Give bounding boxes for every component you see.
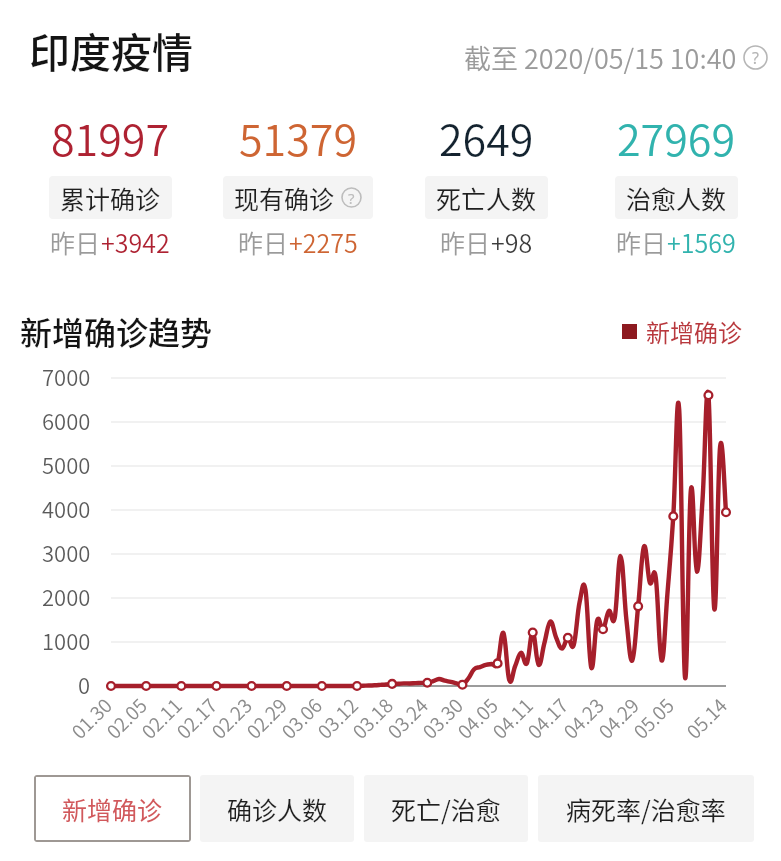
staticText: 03.12 bbox=[311, 691, 364, 744]
staticText: 05.14 bbox=[680, 691, 733, 744]
staticText: 6000 bbox=[42, 404, 91, 436]
staticText: 确诊人数 bbox=[227, 791, 328, 827]
staticText: 新增确诊 bbox=[62, 791, 163, 827]
staticText: 02.23 bbox=[205, 691, 258, 744]
staticText: 04.23 bbox=[557, 691, 610, 744]
staticText: ? bbox=[752, 47, 759, 69]
button[interactable]: 死亡/治愈 bbox=[364, 775, 528, 842]
staticText: 7000 bbox=[42, 360, 91, 392]
staticText: 死亡人数 bbox=[436, 180, 537, 216]
staticText: 01.30 bbox=[65, 691, 118, 744]
staticText: 02.11 bbox=[135, 691, 188, 744]
staticText: 81997 bbox=[51, 106, 170, 168]
staticText: 27969 bbox=[617, 106, 736, 168]
button[interactable]: 病死率/治愈率 bbox=[538, 775, 754, 842]
button[interactable]: 死亡人数 bbox=[425, 176, 548, 219]
staticText: 截至 2020/05/15 10:40 bbox=[464, 38, 737, 77]
button[interactable]: 新增确诊 bbox=[622, 314, 742, 349]
staticText: 病死率/治愈率 bbox=[566, 791, 726, 827]
staticText: 新增确诊趋势 bbox=[20, 308, 213, 354]
staticText: 51379 bbox=[239, 106, 358, 168]
button[interactable]: 治愈人数 bbox=[615, 176, 738, 219]
button[interactable]: 现有确诊 bbox=[223, 176, 373, 219]
staticText: 3000 bbox=[42, 536, 91, 568]
staticText: 5000 bbox=[42, 448, 91, 480]
staticText: 05.05 bbox=[627, 691, 680, 744]
staticText: 04.11 bbox=[486, 691, 539, 744]
staticText: 04.05 bbox=[451, 691, 504, 744]
button[interactable]: 确诊人数 bbox=[200, 775, 354, 842]
staticText: 现有确诊 bbox=[234, 180, 335, 216]
staticText: 03.06 bbox=[275, 691, 328, 744]
staticText: 昨日 bbox=[238, 224, 289, 260]
staticText: +1569 bbox=[667, 224, 736, 260]
staticText: +98 bbox=[491, 224, 533, 260]
staticText: 0 bbox=[78, 668, 91, 700]
staticText: 累计确诊 bbox=[60, 180, 161, 216]
staticText: 新增确诊 bbox=[646, 314, 742, 349]
staticText: 4000 bbox=[42, 492, 91, 524]
staticText: 印度疫情 bbox=[29, 20, 193, 79]
staticText: 治愈人数 bbox=[626, 180, 727, 216]
staticText: 04.17 bbox=[521, 691, 574, 744]
staticText: 昨日 bbox=[440, 224, 491, 260]
button[interactable]: 累计确诊 bbox=[49, 176, 172, 219]
button[interactable]: 新增确诊 bbox=[34, 775, 191, 842]
staticText: 04.29 bbox=[592, 691, 645, 744]
staticText: 02.05 bbox=[100, 691, 153, 744]
staticText: 03.30 bbox=[416, 691, 469, 744]
staticText: 02.17 bbox=[170, 691, 223, 744]
staticText: +2275 bbox=[289, 224, 358, 260]
staticText: 2649 bbox=[439, 106, 534, 168]
staticText: 2000 bbox=[42, 580, 91, 612]
staticText: 03.18 bbox=[346, 691, 399, 744]
staticText: 02.29 bbox=[240, 691, 293, 744]
button[interactable]: Data timestamp info bbox=[464, 38, 768, 77]
staticText: 昨日 bbox=[50, 224, 101, 260]
staticText: +3942 bbox=[101, 224, 170, 260]
staticText: 1000 bbox=[42, 624, 91, 656]
staticText: 03.24 bbox=[381, 691, 434, 744]
staticText: 死亡/治愈 bbox=[391, 791, 501, 827]
staticText: ? bbox=[348, 188, 355, 208]
staticText: 昨日 bbox=[616, 224, 667, 260]
